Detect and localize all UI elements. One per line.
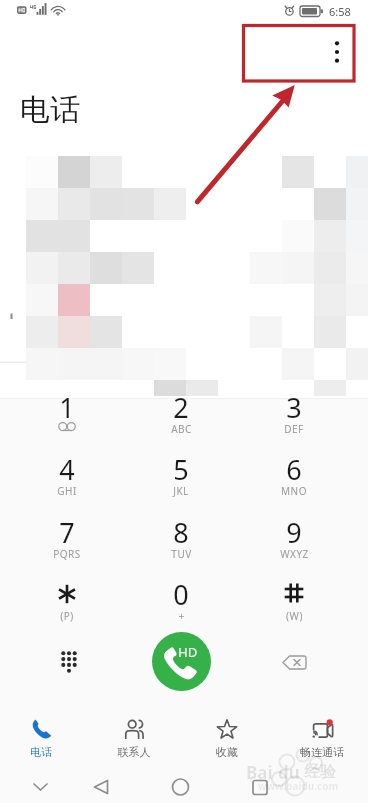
button[interactable]: More options xyxy=(315,30,359,74)
staticText: www.baidu.com xyxy=(258,779,339,793)
button[interactable]: 0 xyxy=(143,563,219,625)
staticText: PQRS xyxy=(53,547,81,561)
staticText: MNO xyxy=(281,484,307,498)
button[interactable]: 收藏 xyxy=(181,709,273,767)
staticText: 7 xyxy=(29,514,105,551)
staticText: + xyxy=(178,609,185,623)
button[interactable]: Call xyxy=(152,632,211,691)
button[interactable]: 4 xyxy=(29,438,105,500)
button[interactable]: 8 xyxy=(143,501,219,563)
staticText: 9 xyxy=(256,514,332,551)
staticText: 收藏 xyxy=(181,745,273,759)
staticText: (W) xyxy=(286,609,303,623)
staticText: 6:58 xyxy=(329,4,351,19)
staticText: 5 xyxy=(143,451,219,488)
staticText: 2 xyxy=(143,389,219,426)
staticText: 4 xyxy=(29,451,105,488)
staticText: ABC xyxy=(171,422,192,436)
staticText: GHI xyxy=(57,484,77,498)
button[interactable]: (P) xyxy=(29,563,105,625)
staticText: 8 xyxy=(143,514,219,551)
staticText: TUV xyxy=(171,547,192,561)
staticText: 6 xyxy=(256,451,332,488)
staticText: (P) xyxy=(60,609,74,623)
button[interactable]: 畅连通话 xyxy=(276,709,368,767)
staticText: 联系人 xyxy=(88,745,180,759)
button[interactable]: 9 xyxy=(256,501,332,563)
staticText: 3 xyxy=(256,389,332,426)
button[interactable]: 联系人 xyxy=(88,709,180,767)
staticText: HD xyxy=(178,643,198,661)
staticText: JKL xyxy=(173,484,189,498)
staticText: 0 xyxy=(143,576,219,613)
button[interactable]: 7 xyxy=(29,501,105,563)
staticText: 1 xyxy=(29,389,105,426)
staticText: du xyxy=(278,761,300,784)
staticText: 畅连通话 xyxy=(276,745,368,759)
button[interactable]: Keypad xyxy=(47,640,91,684)
staticText: Bai xyxy=(246,761,273,784)
button[interactable]: 5 xyxy=(143,438,219,500)
staticText: 经验 xyxy=(304,762,336,782)
button[interactable]: 电话 xyxy=(0,709,87,767)
button[interactable]: Delete xyxy=(272,640,316,684)
staticText: DEF xyxy=(284,422,304,436)
button[interactable]: 1 xyxy=(29,376,105,438)
button[interactable]: 6 xyxy=(256,438,332,500)
button[interactable]: 2 xyxy=(143,376,219,438)
staticText: 电话 xyxy=(20,91,80,129)
staticText: WXYZ xyxy=(280,547,309,561)
button[interactable]: 3 xyxy=(256,376,332,438)
staticText: 电话 xyxy=(0,745,87,759)
button[interactable]: (W) xyxy=(256,563,332,625)
